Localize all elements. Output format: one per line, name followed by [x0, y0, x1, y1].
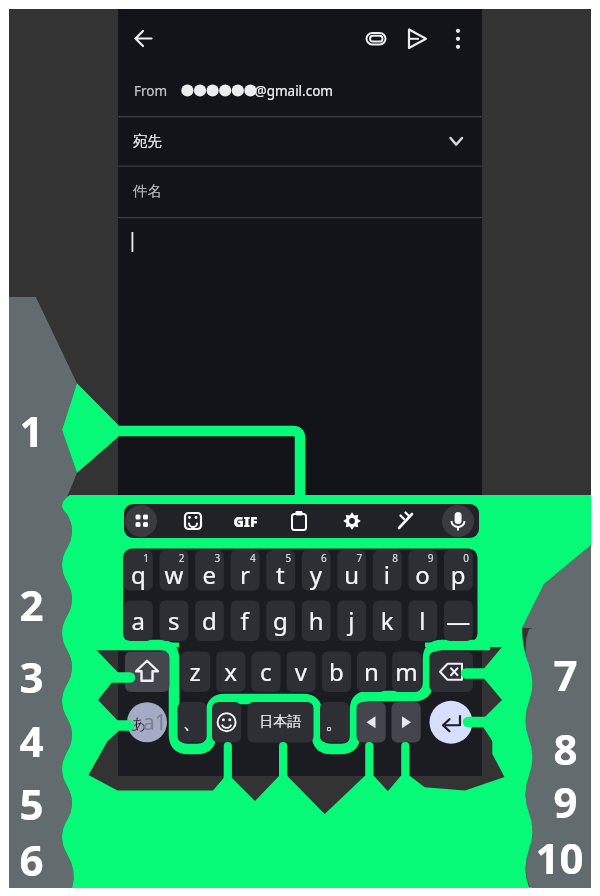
button[interactable]	[0, 0, 600, 896]
